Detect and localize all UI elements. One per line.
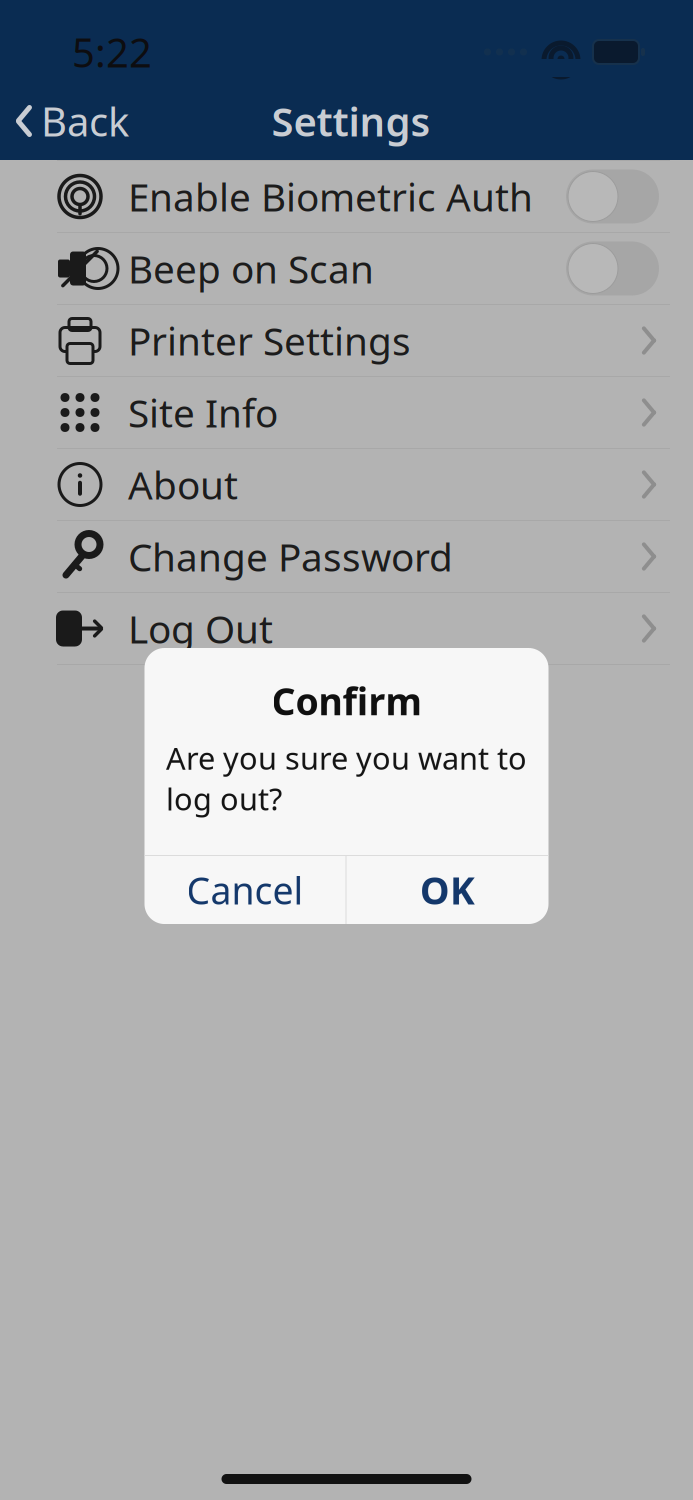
button[interactable]: Site Info: [0, 377, 693, 448]
button[interactable]: Cancel: [144, 856, 345, 924]
button[interactable]: Back: [0, 86, 129, 155]
staticText: Settings: [271, 94, 430, 147]
staticText: Site Info: [128, 387, 278, 438]
staticText: Confirm: [271, 676, 421, 726]
button[interactable]: Enable Biometric Auth: [0, 161, 693, 232]
button[interactable]: OK: [346, 856, 548, 924]
staticText: Back: [41, 94, 129, 147]
button[interactable]: Log Out: [0, 593, 693, 664]
staticText: Change Password: [128, 531, 453, 582]
staticText: Beep on Scan: [128, 243, 374, 294]
button[interactable]: Printer Settings: [0, 305, 693, 376]
staticText: Are you sure you want to log out?: [166, 738, 527, 819]
staticText: Printer Settings: [128, 315, 411, 366]
staticText: OK: [420, 865, 475, 915]
button[interactable]: Change Password: [0, 521, 693, 592]
staticText: 5:22: [72, 25, 152, 78]
staticText: Enable Biometric Auth: [128, 171, 533, 222]
staticText: About: [128, 459, 238, 510]
staticText: Cancel: [186, 865, 303, 915]
button[interactable]: About: [0, 449, 693, 520]
button[interactable]: Beep on Scan: [0, 233, 693, 304]
staticText: Log Out: [128, 603, 273, 654]
